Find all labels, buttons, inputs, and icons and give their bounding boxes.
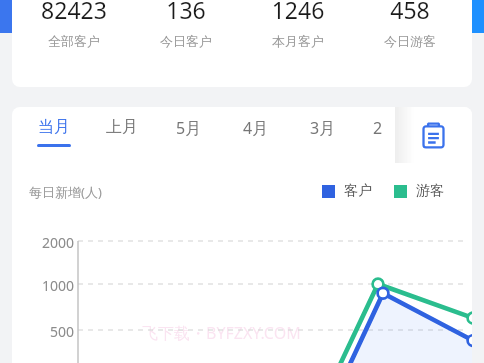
staticText: 82423: [24, 0, 124, 25]
staticText: 136: [136, 0, 236, 25]
staticText: 1246: [248, 0, 348, 25]
button[interactable]: 136: [136, 0, 236, 49]
staticText: 4月: [243, 117, 269, 139]
button[interactable]: 当月: [30, 117, 78, 155]
button[interactable]: 82423: [24, 0, 124, 49]
button[interactable]: 1246: [248, 0, 348, 49]
button[interactable]: 5月: [165, 117, 213, 155]
staticText: 游客: [416, 182, 444, 200]
staticText: 全部客户: [24, 33, 124, 49]
staticText: 本月客户: [248, 33, 348, 49]
staticText: 今日客户: [136, 33, 236, 49]
button[interactable]: 2: [366, 117, 390, 155]
staticText: 458: [360, 0, 460, 25]
staticText: 客户: [344, 182, 372, 200]
staticText: 当月: [38, 117, 70, 137]
staticText: 今日游客: [360, 33, 460, 49]
staticText: 每日新增(人): [29, 183, 102, 201]
staticText: 飞下载・BYFZXY.COM: [142, 322, 301, 344]
staticText: 5月: [176, 117, 202, 139]
button[interactable]: 记录列表: [395, 107, 472, 163]
staticText: 2: [373, 117, 383, 139]
staticText: 上月: [106, 117, 138, 137]
button[interactable]: 458: [360, 0, 460, 49]
staticText: 3月: [310, 117, 336, 139]
staticText: 500: [18, 322, 74, 341]
staticText: 2000: [18, 233, 74, 252]
button[interactable]: 4月: [232, 117, 280, 155]
button[interactable]: 上月: [98, 117, 146, 155]
button[interactable]: 3月: [299, 117, 347, 155]
staticText: 1000: [18, 276, 74, 295]
